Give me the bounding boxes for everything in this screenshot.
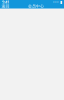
staticText: 9:41 [2,0,9,5]
staticText: 返回 [1,4,9,9]
staticText: ••• ▮ [53,0,62,5]
staticText: 会员中心 [28,4,44,9]
